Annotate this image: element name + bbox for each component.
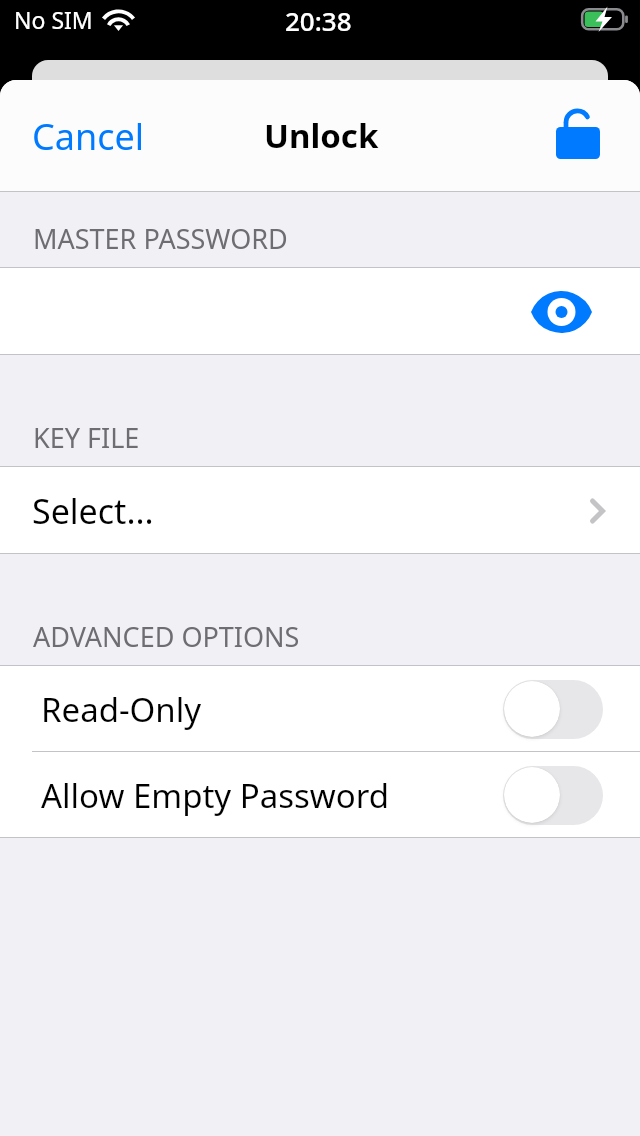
- staticText: MASTER PASSWORD: [33, 220, 288, 257]
- button[interactable]: Read-Only: [503, 679, 603, 739]
- button[interactable]: Show password: [0, 268, 640, 355]
- button[interactable]: Allow Empty Password: [0, 752, 640, 838]
- staticText: Select...: [32, 488, 154, 534]
- button[interactable]: Unlock: [540, 80, 616, 192]
- button[interactable]: Show password: [520, 268, 604, 355]
- button[interactable]: Select...: [0, 467, 640, 554]
- staticText: ADVANCED OPTIONS: [33, 618, 300, 655]
- button[interactable]: Allow Empty Password: [503, 765, 603, 825]
- staticText: Cancel: [32, 112, 145, 161]
- staticText: No SIM: [14, 4, 93, 35]
- staticText: Read-Only: [41, 687, 202, 732]
- staticText: Allow Empty Password: [41, 773, 390, 818]
- staticText: Unlock: [264, 113, 379, 158]
- button[interactable]: Read-Only: [0, 666, 640, 752]
- staticText: KEY FILE: [33, 419, 140, 456]
- button[interactable]: Cancel: [0, 96, 177, 177]
- staticText: 20:38: [285, 3, 352, 38]
